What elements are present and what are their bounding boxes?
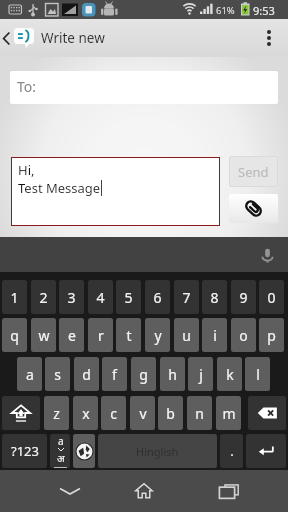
staticText: b [166, 404, 175, 423]
staticText: Hi, [18, 161, 35, 179]
staticText: z [53, 404, 60, 423]
staticText: s [54, 365, 61, 384]
button[interactable]: j [188, 357, 213, 391]
button[interactable]: 4 [88, 280, 113, 314]
button[interactable]: u [174, 318, 199, 352]
staticText: 2 [39, 288, 48, 307]
staticText: h [168, 365, 177, 384]
staticText: Write new [41, 29, 105, 47]
button[interactable]: ?123 [2, 434, 47, 468]
button[interactable]: Change language [50, 434, 70, 468]
button[interactable]: Shift [2, 396, 40, 430]
button[interactable]: Change input method [73, 434, 95, 468]
button[interactable]: w [31, 318, 56, 352]
button[interactable]: o [231, 318, 256, 352]
button[interactable]: m [216, 396, 241, 430]
button[interactable]: f [102, 357, 127, 391]
staticText: g [139, 365, 148, 384]
button[interactable]: z [44, 396, 69, 430]
staticText: 9:53 [253, 3, 275, 18]
button[interactable]: a [17, 357, 42, 391]
staticText: 3 [67, 288, 76, 307]
staticText: w [38, 326, 50, 345]
button[interactable]: 7 [174, 280, 199, 314]
other: Back [2, 31, 11, 46]
button[interactable]: k [217, 357, 242, 391]
staticText: अ [57, 451, 65, 465]
staticText: q [10, 326, 19, 345]
button[interactable]: Hi, [11, 157, 220, 226]
staticText: d [82, 365, 91, 384]
button[interactable]: q [2, 318, 27, 352]
button[interactable]: More options [250, 19, 288, 57]
staticText: ?123 [11, 442, 39, 460]
button[interactable]: i [202, 318, 227, 352]
button[interactable]: s [45, 357, 70, 391]
button[interactable]: 8 [202, 280, 227, 314]
button[interactable]: . [220, 434, 243, 468]
button[interactable]: To: [10, 71, 278, 104]
button[interactable]: h [160, 357, 185, 391]
button[interactable]: Back [22, 470, 118, 512]
staticText: 61% [216, 4, 235, 17]
button[interactable]: l [245, 357, 270, 391]
staticText: t [126, 326, 132, 345]
button[interactable]: Home [118, 470, 170, 512]
button[interactable]: b [158, 396, 183, 430]
button[interactable]: t [116, 318, 141, 352]
staticText: m [222, 404, 236, 423]
button[interactable]: Backspace [248, 396, 286, 430]
button[interactable]: 5 [116, 280, 141, 314]
staticText: x [82, 404, 90, 423]
button[interactable]: n [187, 396, 212, 430]
button[interactable]: d [74, 357, 99, 391]
button[interactable]: y [145, 318, 170, 352]
staticText: Hinglish [136, 444, 179, 459]
staticText: a [58, 434, 64, 448]
staticText: a [26, 365, 34, 384]
button[interactable]: Back [0, 28, 34, 48]
staticText: v [139, 404, 147, 423]
staticText: Test Message [18, 179, 101, 197]
staticText: . [230, 442, 234, 460]
button[interactable]: Send [229, 156, 278, 187]
button[interactable]: r [88, 318, 113, 352]
button[interactable]: c [101, 396, 126, 430]
staticText: c [110, 404, 117, 423]
staticText: u [182, 326, 191, 345]
button[interactable]: e [59, 318, 84, 352]
button[interactable]: Recents [170, 470, 288, 512]
staticText: n [195, 404, 204, 423]
button[interactable]: g [131, 357, 156, 391]
staticText: 9 [239, 288, 248, 307]
staticText: e [68, 326, 76, 345]
staticText: l [256, 365, 260, 384]
staticText: j [199, 365, 203, 384]
button[interactable]: 0 [259, 280, 284, 314]
button[interactable]: 9 [231, 280, 256, 314]
staticText: 6 [153, 288, 162, 307]
button[interactable]: Voice input [253, 241, 281, 269]
staticText: i [213, 326, 217, 345]
button[interactable]: 2 [31, 280, 56, 314]
staticText: p [267, 326, 276, 345]
button[interactable]: Hinglish [98, 434, 217, 468]
staticText: o [239, 326, 248, 345]
staticText: 4 [96, 288, 105, 307]
staticText: f [112, 365, 117, 384]
button[interactable]: Enter [246, 434, 286, 468]
staticText: To: [17, 77, 37, 96]
staticText: 8 [210, 288, 219, 307]
button[interactable]: x [73, 396, 98, 430]
button[interactable]: 6 [145, 280, 170, 314]
staticText: y [154, 326, 162, 345]
staticText: k [226, 365, 234, 384]
staticText: 5 [124, 288, 133, 307]
button[interactable]: 3 [59, 280, 84, 314]
button[interactable]: 1 [2, 280, 27, 314]
button[interactable]: v [130, 396, 155, 430]
staticText: 7 [182, 288, 191, 307]
staticText: r [98, 326, 104, 345]
button[interactable]: Attach [229, 194, 278, 223]
button[interactable]: p [259, 318, 284, 352]
